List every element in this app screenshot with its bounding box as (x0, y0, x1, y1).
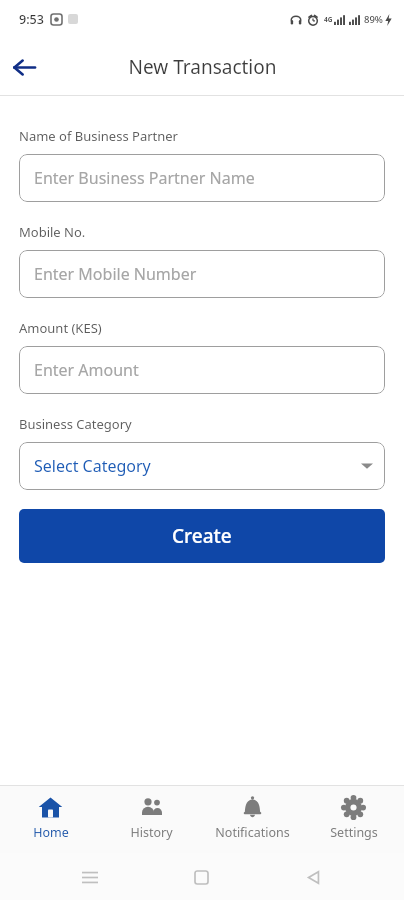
button[interactable]: Home (180, 856, 222, 898)
staticText: History (130, 824, 173, 841)
staticText: Home (33, 824, 69, 841)
button[interactable]: Enter Mobile Number (19, 250, 385, 298)
button[interactable]: History (101, 786, 202, 853)
staticText: 89% (364, 13, 383, 26)
staticText: 9:53 (19, 11, 44, 28)
button[interactable]: Back (292, 856, 334, 898)
staticText: Enter Mobile Number (34, 263, 197, 285)
button[interactable]: Create (19, 509, 385, 563)
staticText: Business Category (19, 415, 132, 433)
staticText: Enter Business Partner Name (34, 167, 255, 189)
button[interactable]: Select Category (19, 442, 385, 490)
button[interactable]: Recent apps (69, 856, 111, 898)
staticText: Name of Business Partner (19, 127, 178, 145)
staticText: Mobile No. (19, 223, 86, 241)
staticText: 4G (324, 15, 333, 24)
button[interactable]: Home (0, 786, 101, 853)
button[interactable]: Back (5, 48, 43, 86)
staticText: Create (172, 523, 232, 549)
staticText: Notifications (215, 824, 290, 841)
staticText: New Transaction (128, 54, 277, 80)
button[interactable]: Settings (303, 786, 404, 853)
button[interactable]: Enter Amount (19, 346, 385, 394)
staticText: Select Category (34, 455, 151, 477)
button[interactable]: Enter Business Partner Name (19, 154, 385, 202)
staticText: Settings (330, 824, 378, 841)
button[interactable]: Notifications (202, 786, 303, 853)
staticText: Enter Amount (34, 359, 139, 381)
staticText: Amount (KES) (19, 319, 102, 337)
